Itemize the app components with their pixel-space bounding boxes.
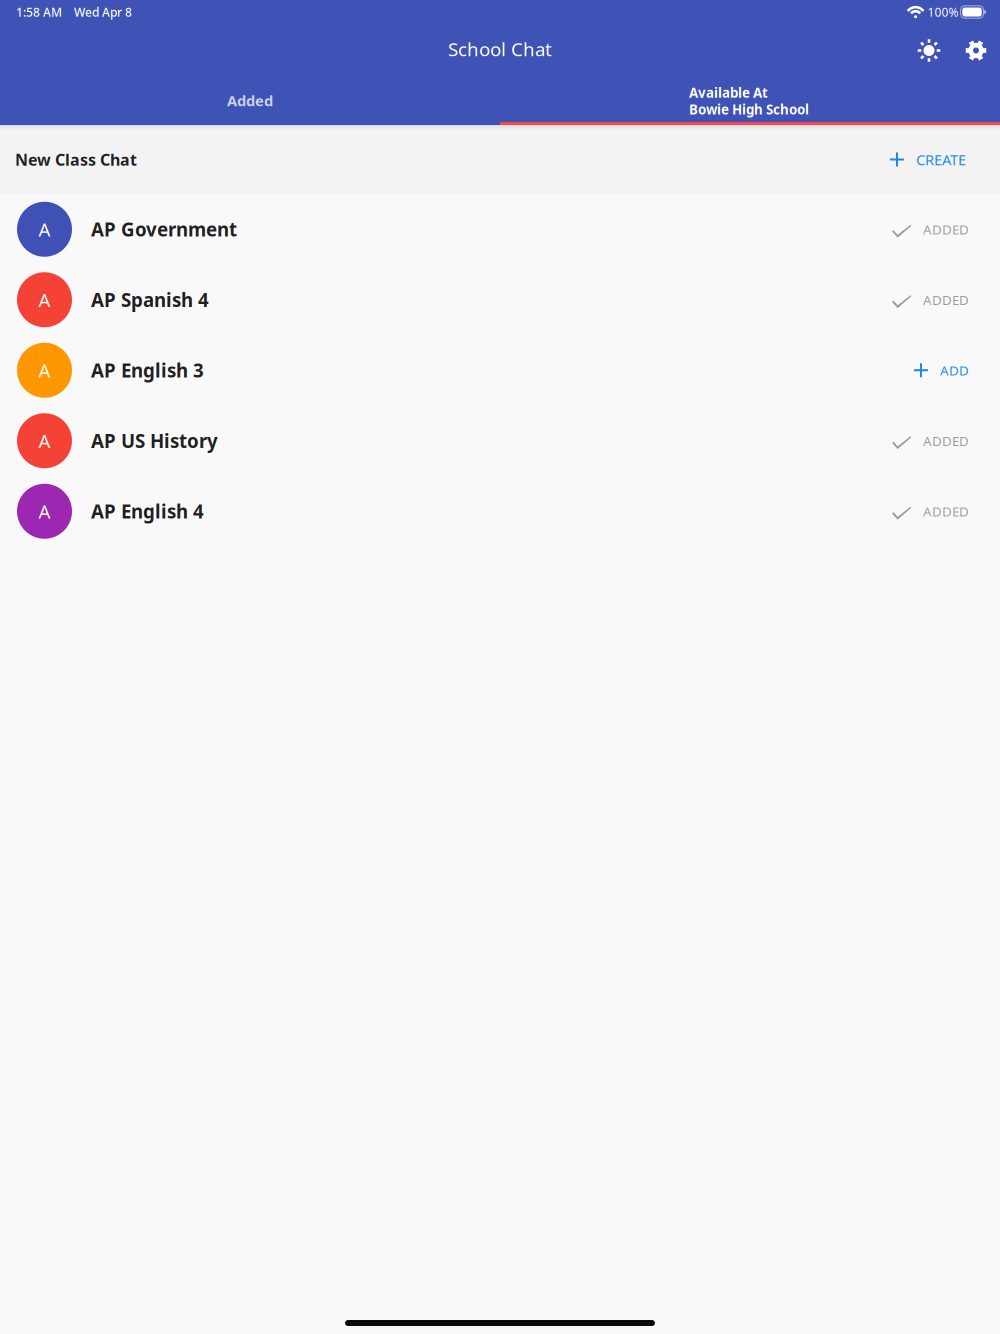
staticText: AP US History [91,428,218,453]
staticText: ADDED [923,432,969,450]
button[interactable]: A [0,476,1000,546]
staticText: Available At [689,84,768,101]
button[interactable]: Settings [953,27,999,73]
staticText: AP English 3 [91,358,204,383]
staticText: A [38,217,50,242]
staticText: ADDED [923,220,969,238]
staticText: ADDED [923,291,969,309]
staticText: A [38,358,50,383]
staticText: Wed Apr 8 [74,4,132,20]
staticText: A [38,287,50,312]
staticText: A [38,428,50,453]
button[interactable]: Added [0,74,500,125]
staticText: ADD [940,361,969,379]
staticText: ADDED [923,502,969,520]
staticText: 1:58 AM [16,4,62,20]
staticText: AP English 4 [91,499,204,524]
button[interactable]: Brightness [906,27,952,73]
staticText: AP Government [91,217,237,242]
staticText: New Class Chat [15,149,137,170]
button[interactable]: A [0,264,1000,335]
staticText: Added [227,91,273,110]
staticText: AP Spanish 4 [91,287,209,312]
staticText: A [38,499,50,524]
staticText: Bowie High School [689,100,809,118]
staticText: 100% [928,4,959,20]
button[interactable]: A [0,194,1000,264]
staticText: CREATE [916,150,966,169]
button[interactable]: A [0,405,1000,476]
button[interactable]: Available At [500,74,1000,125]
staticText: School Chat [448,37,552,61]
button[interactable]: A [0,335,1000,405]
button[interactable]: CREATE [890,150,1000,174]
